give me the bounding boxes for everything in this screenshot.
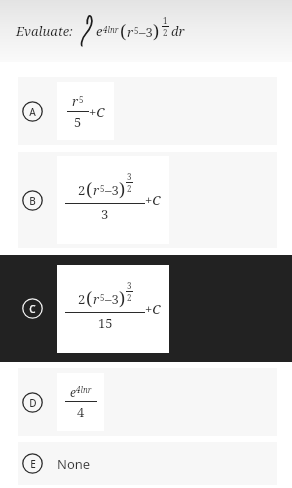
staticText: C [29, 302, 36, 316]
staticText: E [30, 457, 36, 471]
staticText: 2 [127, 183, 132, 194]
staticText: r [93, 290, 100, 308]
staticText: 1 [163, 15, 168, 26]
staticText: 2 [163, 27, 168, 38]
staticText: r [93, 181, 100, 199]
staticText: 4lnr [76, 384, 92, 395]
staticText: 4 [77, 403, 85, 421]
staticText: ) [119, 177, 126, 202]
staticText: B [29, 194, 36, 208]
staticText: +C [145, 191, 161, 209]
button[interactable]: C [0, 255, 292, 362]
staticText: 3 [127, 280, 132, 291]
staticText: 2 [78, 181, 86, 199]
staticText: –3 [139, 23, 153, 41]
staticText: –3 [105, 181, 119, 199]
button[interactable]: D [18, 368, 277, 436]
button[interactable]: E [18, 442, 277, 485]
staticText: Evaluate: [16, 22, 73, 40]
staticText: dr [171, 22, 185, 40]
staticText: +C [145, 300, 161, 318]
staticText: e [70, 384, 76, 400]
staticText: 15 [98, 314, 113, 332]
staticText: 5 [79, 94, 84, 105]
button[interactable]: B [18, 152, 277, 248]
staticText: r [72, 92, 79, 110]
staticText: +C [89, 103, 105, 121]
staticText: ( [120, 19, 127, 44]
staticText: ( [86, 177, 93, 202]
staticText: –3 [105, 290, 119, 308]
staticText: 3 [101, 205, 109, 223]
staticText: r [127, 23, 134, 41]
button[interactable]: A [18, 77, 277, 145]
staticText: 2 [78, 290, 86, 308]
staticText: ( [86, 286, 93, 311]
staticText: D [29, 396, 37, 410]
staticText: e [96, 22, 103, 40]
staticText: None [57, 455, 91, 473]
staticText: 5 [100, 292, 105, 303]
staticText: 3 [127, 171, 132, 182]
staticText: 5 [100, 183, 105, 194]
staticText: 5 [74, 113, 82, 131]
staticText: ) [119, 286, 126, 311]
staticText: 4lnr [103, 24, 119, 35]
staticText: 5 [134, 25, 139, 36]
staticText: ) [153, 19, 160, 44]
staticText: A [29, 105, 36, 119]
staticText: 2 [127, 292, 132, 303]
